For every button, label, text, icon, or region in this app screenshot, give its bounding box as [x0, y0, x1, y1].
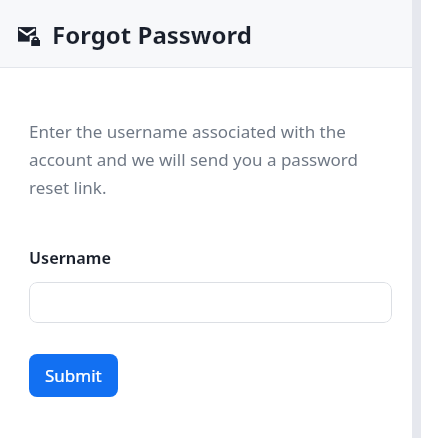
staticText: Submit — [45, 364, 102, 387]
button[interactable]: Submit — [29, 354, 118, 397]
other: Forgot password — [18, 24, 40, 46]
staticText: Username — [29, 247, 111, 269]
staticText: Enter the username associated with the a… — [29, 120, 392, 199]
button[interactable]: Username input field — [29, 282, 392, 323]
staticText: Forgot Password — [52, 18, 252, 51]
